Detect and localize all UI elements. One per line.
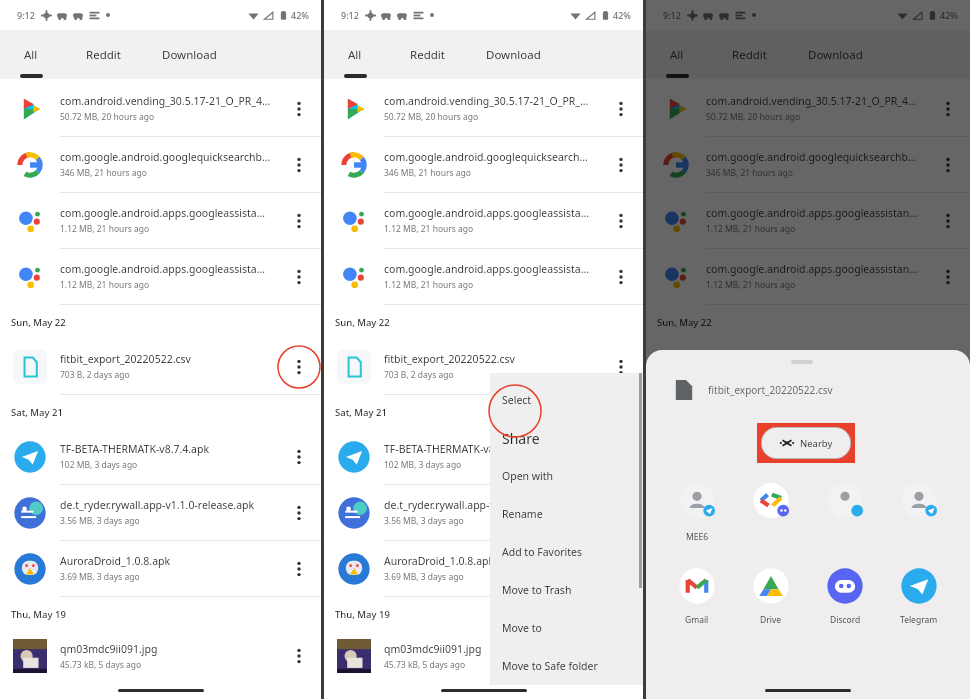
button[interactable]: qm03mdc9ii091.jpg — [324, 631, 643, 681]
staticText: com.google.android.apps.googleassistant_… — [706, 262, 920, 276]
button[interactable]: More options — [599, 429, 643, 484]
button[interactable]: Move to — [490, 609, 643, 647]
button[interactable]: Share — [490, 419, 643, 457]
staticText: 1.12 MB, 21 hours ago — [706, 223, 796, 235]
staticText: 102 MB, 3 days ago — [384, 459, 462, 471]
button[interactable]: AuroraDroid_1.0.8.apk — [646, 541, 970, 597]
button[interactable]: More options — [277, 541, 321, 596]
button[interactable]: Reddit — [708, 30, 790, 79]
staticText: Thu, May 19 — [11, 608, 66, 621]
button[interactable]: Open with — [490, 457, 643, 495]
button[interactable]: Reddit — [62, 30, 144, 79]
button[interactable]: More options — [599, 249, 643, 304]
button[interactable]: Select — [490, 381, 643, 419]
button[interactable]: com.google.android.apps.googleassistant_… — [0, 193, 321, 249]
button[interactable]: TF-BETA-THERMATK-v8.7.4.apk — [646, 429, 970, 485]
staticText: 703 B, 2 days ago — [384, 369, 454, 381]
button[interactable]: com.google.android.apps.googleassistant_… — [324, 193, 643, 249]
button[interactable]: Rename — [490, 495, 643, 533]
button[interactable] — [734, 482, 808, 542]
button[interactable]: Download — [790, 30, 880, 79]
button[interactable]: com.google.android.googlequicksearchbox… — [0, 137, 321, 193]
button[interactable]: Move to Trash — [490, 571, 643, 609]
button[interactable]: More options — [926, 249, 970, 304]
button[interactable]: de.t_ryder.rywall.app-v1.1.0-release.apk — [324, 485, 643, 541]
staticText: Sun, May 22 — [11, 316, 66, 329]
button[interactable]: More options — [926, 137, 970, 192]
button[interactable]: Move to Safe folder — [490, 647, 643, 685]
staticText: Open with — [502, 469, 554, 483]
button[interactable]: More options — [599, 485, 643, 540]
button[interactable]: com.google.android.googlequicksearchbox… — [646, 137, 970, 193]
staticText: Gmail — [685, 614, 709, 626]
button[interactable]: Download — [468, 30, 558, 79]
button[interactable]: More options — [599, 339, 643, 394]
button[interactable]: More options — [277, 485, 321, 540]
button[interactable]: MEE6 — [660, 482, 734, 543]
button[interactable]: com.android.vending_30.5.17-21_O_PR_447… — [0, 81, 321, 137]
button[interactable]: More options — [277, 137, 321, 192]
button[interactable]: More options — [599, 137, 643, 192]
button[interactable]: fitbit_export_20220522.csv — [0, 339, 321, 395]
button[interactable]: com.google.android.apps.googleassistant_… — [646, 193, 970, 249]
button[interactable]: More options — [277, 631, 321, 681]
button[interactable]: de.t_ryder.rywall.app-v1.1.0-release.apk — [646, 485, 970, 541]
button[interactable]: de.t_ryder.rywall.app-v1.1.0-release.apk — [0, 485, 321, 541]
button[interactable] — [808, 482, 882, 542]
button[interactable]: com.android.vending_30.5.17-21_O_PR_447… — [646, 81, 970, 137]
button[interactable]: More options — [599, 541, 643, 596]
button[interactable]: Reddit — [386, 30, 468, 79]
button[interactable]: com.google.android.apps.googleassistant_… — [324, 249, 643, 305]
staticText: 703 B, 2 days ago — [60, 369, 130, 381]
staticText: 346 MB, 21 hours ago — [60, 167, 147, 179]
button[interactable]: Telegram — [882, 565, 956, 626]
button[interactable]: AuroraDroid_1.0.8.apk — [324, 541, 643, 597]
button[interactable]: Drive — [734, 565, 808, 626]
staticText: AuroraDroid_1.0.8.apk — [60, 554, 171, 568]
staticText: 45.73 kB, 5 days ago — [60, 659, 142, 671]
button[interactable]: More options — [277, 249, 321, 304]
button[interactable]: fitbit_export_20220522.csv — [646, 339, 970, 395]
button[interactable]: com.google.android.apps.googleassistant_… — [646, 249, 970, 305]
button[interactable]: Add to Favorites — [490, 533, 643, 571]
button[interactable]: com.android.vending_30.5.17-21_O_PR_447… — [324, 81, 643, 137]
button[interactable]: More options — [926, 193, 970, 248]
button[interactable]: Gmail — [660, 565, 734, 626]
staticText: Thu, May 19 — [335, 608, 390, 621]
staticText: com.google.android.apps.googleassistant_… — [60, 206, 271, 220]
button[interactable]: Discord — [808, 565, 882, 626]
button[interactable]: com.google.android.apps.googleassistant_… — [0, 249, 321, 305]
button[interactable]: Download — [144, 30, 234, 79]
button[interactable] — [882, 482, 956, 542]
button[interactable]: More options — [599, 193, 643, 248]
button[interactable]: More options — [277, 193, 321, 248]
button[interactable]: com.google.android.googlequicksearchbox… — [324, 137, 643, 193]
button[interactable]: qm03mdc9ii091.jpg — [0, 631, 321, 681]
button[interactable]: Nearby — [761, 427, 851, 459]
button[interactable]: All — [324, 30, 386, 79]
button[interactable]: More options — [926, 485, 970, 540]
staticText: com.android.vending_30.5.17-21_O_PR_447… — [706, 94, 920, 108]
button[interactable]: All — [0, 30, 62, 79]
button[interactable]: More options — [599, 81, 643, 136]
button[interactable]: More options — [277, 339, 321, 394]
button[interactable]: More options — [926, 541, 970, 596]
button[interactable]: More options — [277, 429, 321, 484]
button[interactable]: More options — [277, 81, 321, 136]
button[interactable]: AuroraDroid_1.0.8.apk — [0, 541, 321, 597]
staticText: 3.69 MB, 3 days ago — [706, 571, 786, 583]
button[interactable]: More options — [926, 81, 970, 136]
button[interactable]: fitbit_export_20220522.csv — [324, 339, 643, 395]
button[interactable]: More options — [926, 339, 970, 394]
button[interactable]: TF-BETA-THERMATK-v8.7.4.apk — [0, 429, 321, 485]
staticText: 3.56 MB, 3 days ago — [60, 515, 140, 527]
button[interactable]: TF-BETA-THERMATK-v8.7.4.apk — [324, 429, 643, 485]
staticText: Rename — [502, 507, 543, 521]
staticText: Reddit — [732, 47, 767, 63]
button[interactable]: All — [646, 30, 708, 79]
